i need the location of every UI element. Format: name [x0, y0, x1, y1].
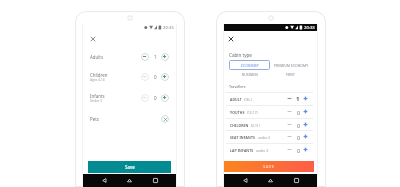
- button[interactable]: Close: [86, 32, 99, 45]
- button[interactable]: Decrease Children: [141, 73, 149, 81]
- staticText: 20:33: [304, 25, 315, 31]
- staticText: BUSINESS: [242, 72, 259, 76]
- staticText: ADULT: [230, 97, 242, 102]
- staticText: FIRST: [286, 72, 296, 76]
- staticText: 0: [297, 122, 300, 129]
- button[interactable]: Close: [224, 32, 237, 45]
- button[interactable]: Decrease LAP INFANTS: [286, 146, 294, 154]
- button[interactable]: Increase Children: [161, 73, 169, 81]
- button[interactable]: Back: [241, 176, 250, 185]
- button[interactable]: FIRST: [271, 70, 311, 78]
- button[interactable]: Increase SEAT INFANTS: [302, 133, 310, 141]
- staticText: Save: [125, 164, 135, 170]
- staticText: LAP INFANTS: [230, 148, 254, 153]
- staticText: 1: [296, 95, 300, 103]
- button[interactable]: BUSINESS: [230, 70, 270, 78]
- button[interactable]: Increase CHILDREN: [302, 121, 310, 129]
- button[interactable]: Home: [125, 176, 134, 185]
- button[interactable]: Back: [100, 176, 109, 185]
- staticText: Under 2: [90, 99, 103, 103]
- button[interactable]: ECONOMY: [229, 60, 270, 70]
- button[interactable]: Decrease CHILDREN: [286, 121, 294, 129]
- button[interactable]: Increase ADULT: [302, 95, 310, 103]
- staticText: Ages 4-14: [90, 78, 105, 82]
- staticText: 0: [297, 147, 300, 154]
- staticText: SAVE: [263, 164, 275, 170]
- button[interactable]: PREMIUM ECONOMY: [271, 60, 311, 70]
- staticText: (2-11): [251, 123, 260, 127]
- button[interactable]: Recents: [292, 176, 301, 185]
- button[interactable]: Home: [266, 176, 275, 185]
- staticText: Travellers: [229, 84, 246, 89]
- staticText: under 2: [258, 135, 271, 139]
- staticText: 0: [154, 74, 157, 80]
- staticText: 1: [154, 54, 157, 60]
- staticText: Children: [90, 72, 108, 78]
- button[interactable]: Increase YOUTHS: [302, 108, 310, 116]
- button[interactable]: Increase Adults: [161, 53, 169, 61]
- staticText: 0: [297, 109, 300, 116]
- button[interactable]: Add pets: [161, 115, 169, 123]
- staticText: under 2: [256, 148, 269, 152]
- staticText: CHILDREN: [230, 123, 249, 128]
- staticText: 0: [154, 95, 157, 101]
- button[interactable]: Decrease Adults: [141, 53, 149, 61]
- staticText: 20:33: [163, 25, 174, 31]
- staticText: SEAT INFANTS: [230, 135, 256, 140]
- button[interactable]: Decrease ADULT: [286, 95, 294, 103]
- button[interactable]: Recents: [151, 176, 160, 185]
- button[interactable]: Decrease YOUTHS: [286, 108, 294, 116]
- staticText: Pets: [90, 116, 99, 122]
- staticText: (12-17): [247, 110, 258, 114]
- staticText: ECONOMY: [241, 63, 259, 67]
- staticText: YOUTHS: [230, 110, 245, 115]
- staticText: PREMIUM ECONOMY: [274, 63, 309, 67]
- staticText: (18+): [244, 97, 252, 101]
- staticText: Adults: [90, 54, 104, 60]
- button[interactable]: Save: [88, 161, 171, 173]
- staticText: Cabin type: [229, 52, 252, 58]
- button[interactable]: Increase Infants: [161, 94, 169, 102]
- staticText: 0: [297, 134, 300, 141]
- button[interactable]: Increase LAP INFANTS: [302, 146, 310, 154]
- button[interactable]: Decrease Infants: [141, 94, 149, 102]
- button[interactable]: SAVE: [224, 161, 314, 172]
- button[interactable]: Decrease SEAT INFANTS: [286, 133, 294, 141]
- staticText: Infants: [90, 93, 105, 99]
